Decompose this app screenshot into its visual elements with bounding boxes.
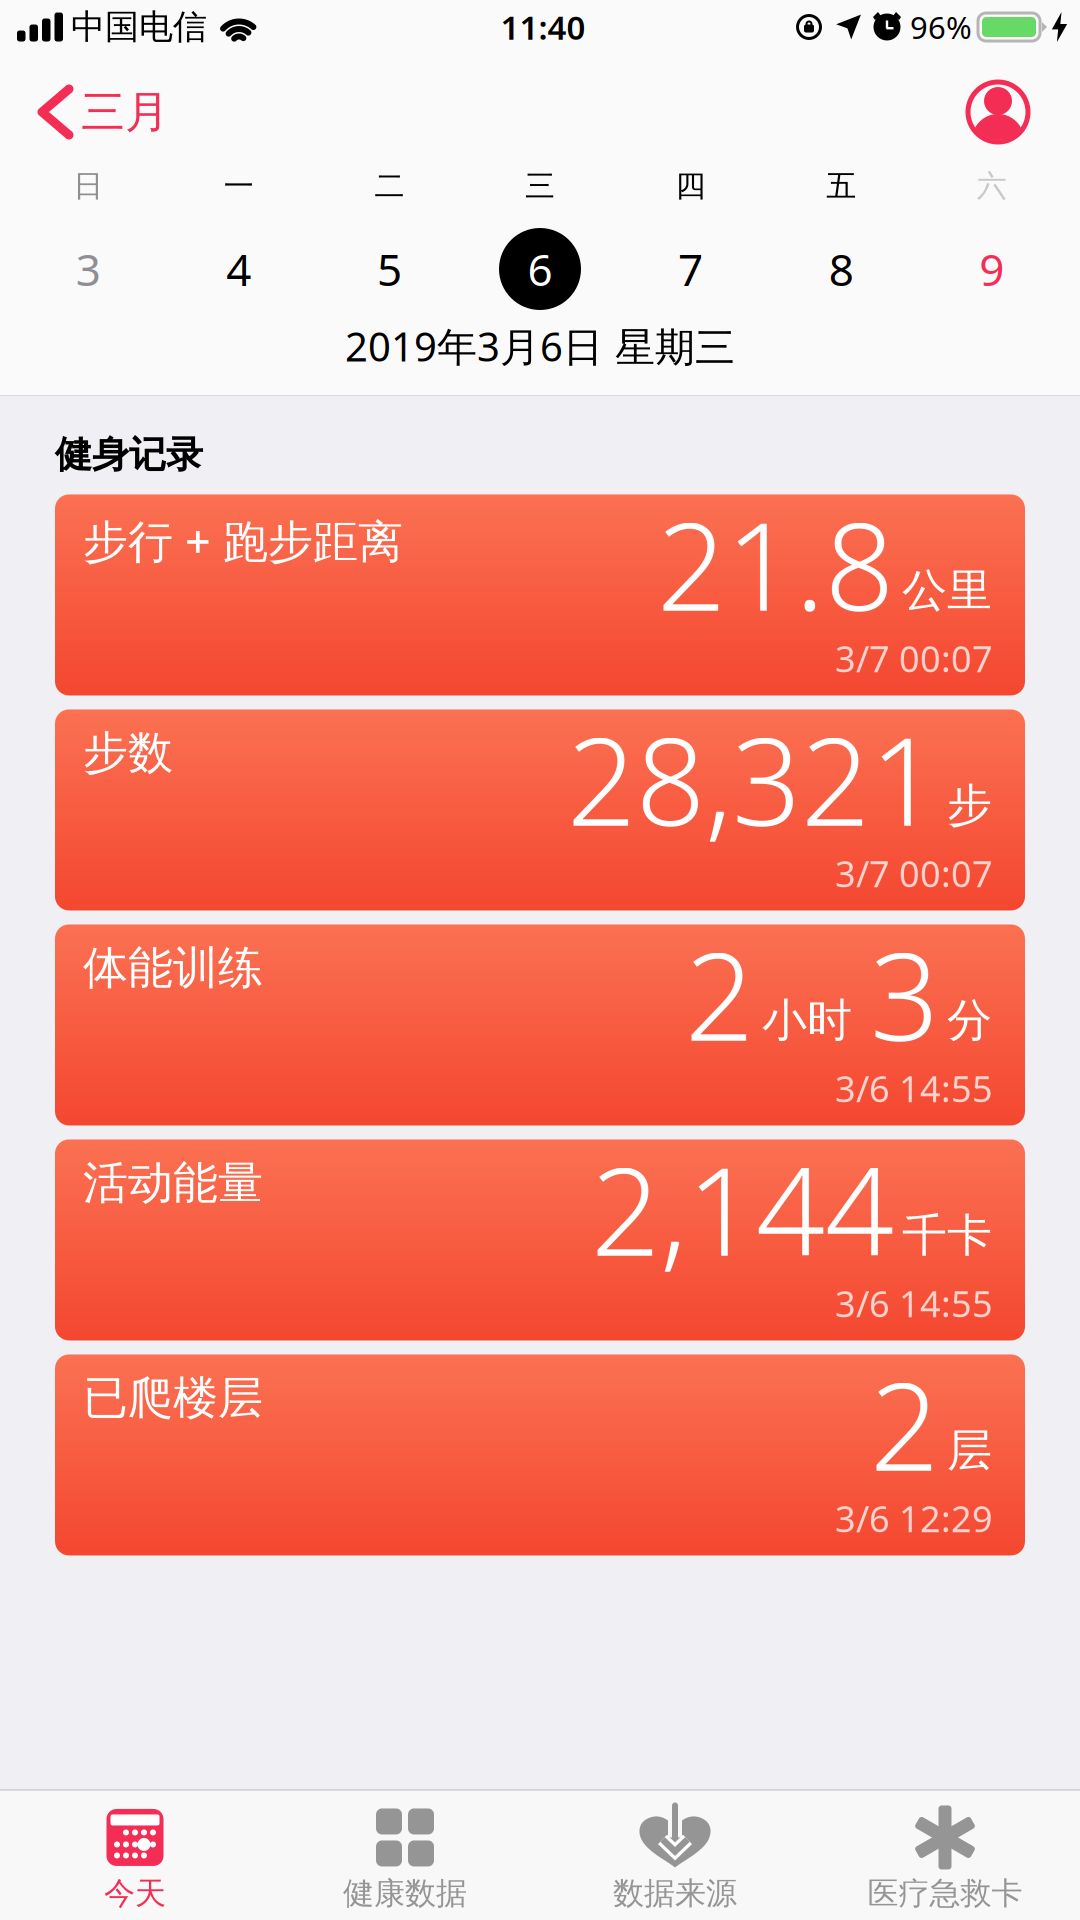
button[interactable]: 9 [916, 240, 1067, 298]
staticText: 健康数据 [343, 1874, 467, 1913]
staticText: 健身记录 [55, 432, 203, 477]
button[interactable]: 今天 [0, 1808, 270, 1913]
staticText: 3/6 14:55 [835, 1064, 993, 1112]
staticText: 三月 [81, 85, 169, 139]
button[interactable]: 6 [465, 228, 615, 310]
button[interactable]: 数据来源 [540, 1808, 810, 1913]
staticText: 96% [910, 6, 972, 48]
staticText: 四 [676, 168, 706, 204]
staticText: 28,321 [567, 698, 939, 859]
button[interactable]: 医疗急救卡 [810, 1808, 1080, 1913]
staticText: 4 [226, 240, 251, 298]
staticText: 千卡 [902, 1208, 992, 1263]
button[interactable]: 步数 [55, 709, 1025, 910]
button[interactable]: 5 [314, 240, 465, 298]
staticText: 公里 [902, 563, 992, 618]
button[interactable]: 8 [766, 240, 916, 298]
staticText: 层 [947, 1423, 992, 1478]
staticText: 五 [826, 168, 856, 204]
button[interactable]: 4 [164, 240, 314, 298]
staticText: 医疗急救卡 [867, 1874, 1022, 1913]
staticText: 数据来源 [613, 1874, 737, 1913]
staticText: 2019年3月6日 星期三 [345, 319, 735, 372]
staticText: 2,144 [591, 1128, 894, 1289]
staticText: 2 [685, 913, 754, 1074]
staticText: 7 [678, 240, 703, 298]
button[interactable]: 步行 + 跑步距离 [55, 494, 1025, 695]
button[interactable]: 三月 [0, 85, 169, 139]
staticText: 3 [76, 240, 101, 298]
staticText: 分 [947, 993, 992, 1048]
staticText: 11:40 [500, 5, 585, 49]
staticText: 5 [377, 240, 402, 298]
staticText: 步数 [83, 725, 173, 781]
button[interactable]: 已爬楼层 [55, 1354, 1025, 1555]
staticText: 3/6 14:55 [835, 1279, 993, 1327]
staticText: 2 [870, 1343, 939, 1504]
staticText: 21.8 [657, 483, 894, 644]
staticText: 6 [527, 240, 552, 298]
staticText: 步 [947, 778, 992, 833]
button[interactable]: 7 [615, 240, 766, 298]
staticText: 活动能量 [83, 1155, 263, 1211]
staticText: 3/7 00:07 [835, 634, 993, 682]
staticText: 中国电信 [71, 6, 207, 48]
staticText: 3/7 00:07 [835, 849, 993, 897]
staticText: 3 [870, 913, 939, 1074]
staticText: 步行 + 跑步距离 [83, 510, 403, 570]
staticText: 一 [224, 168, 254, 204]
button[interactable]: 3 [13, 240, 164, 298]
staticText: 体能训练 [83, 940, 263, 996]
staticText: 三 [525, 168, 555, 204]
button[interactable]: 体能训练 [55, 924, 1025, 1125]
staticText: 日 [73, 168, 103, 204]
staticText: 9 [979, 240, 1004, 298]
staticText: 六 [977, 168, 1007, 204]
button[interactable]: 个人资料 [968, 82, 1080, 142]
staticText: 8 [829, 240, 854, 298]
button[interactable]: 活动能量 [55, 1139, 1025, 1340]
staticText: 3/6 12:29 [835, 1494, 993, 1542]
staticText: 小时 [762, 993, 852, 1048]
button[interactable]: 健康数据 [270, 1808, 540, 1913]
staticText: 二 [374, 168, 404, 204]
staticText: 今天 [104, 1874, 166, 1913]
staticText: 已爬楼层 [83, 1370, 263, 1426]
